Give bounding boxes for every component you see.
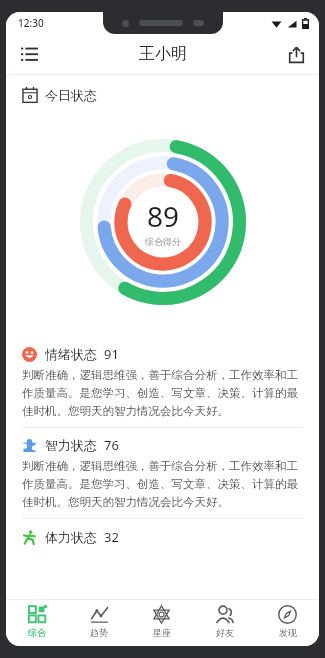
staticText: 91 bbox=[104, 345, 119, 363]
staticText: 星座 bbox=[153, 627, 171, 638]
button[interactable]: 智力状态 bbox=[6, 428, 319, 518]
staticText: 综合 bbox=[28, 627, 46, 638]
staticText: 发现 bbox=[279, 627, 297, 638]
staticText: 76 bbox=[104, 436, 119, 454]
button[interactable]: 综合 bbox=[6, 600, 68, 646]
button[interactable]: 趋势 bbox=[68, 600, 130, 646]
staticText: 32 bbox=[104, 528, 119, 546]
staticText: 89 bbox=[147, 197, 180, 235]
staticText: 判断准确，逻辑思维强，善于综合分析，工作效率和工作质量高。是您学习、创造、写文章… bbox=[22, 459, 305, 510]
staticText: 趋势 bbox=[90, 627, 108, 638]
button[interactable]: 今日状态 bbox=[22, 87, 319, 103]
staticText: 情绪状态 bbox=[45, 346, 97, 362]
button[interactable]: Menu bbox=[12, 37, 46, 71]
staticText: 好友 bbox=[216, 627, 234, 638]
button[interactable]: Share bbox=[279, 37, 313, 71]
staticText: 综合得分 bbox=[145, 236, 181, 247]
button[interactable]: 体力状态 bbox=[22, 528, 303, 546]
staticText: 判断准确，逻辑思维强，善于综合分析，工作效率和工作质量高。是您学习、创造、写文章… bbox=[22, 368, 305, 419]
staticText: 今日状态 bbox=[45, 87, 97, 103]
button[interactable]: 情绪状态 bbox=[6, 337, 319, 427]
staticText: 12:30 bbox=[18, 16, 44, 30]
button[interactable]: 星座 bbox=[130, 600, 193, 646]
button[interactable]: 发现 bbox=[256, 600, 319, 646]
button[interactable]: 好友 bbox=[193, 600, 256, 646]
staticText: 智力状态 bbox=[45, 437, 97, 453]
staticText: 王小明 bbox=[139, 44, 187, 64]
staticText: 体力状态 bbox=[45, 529, 97, 545]
